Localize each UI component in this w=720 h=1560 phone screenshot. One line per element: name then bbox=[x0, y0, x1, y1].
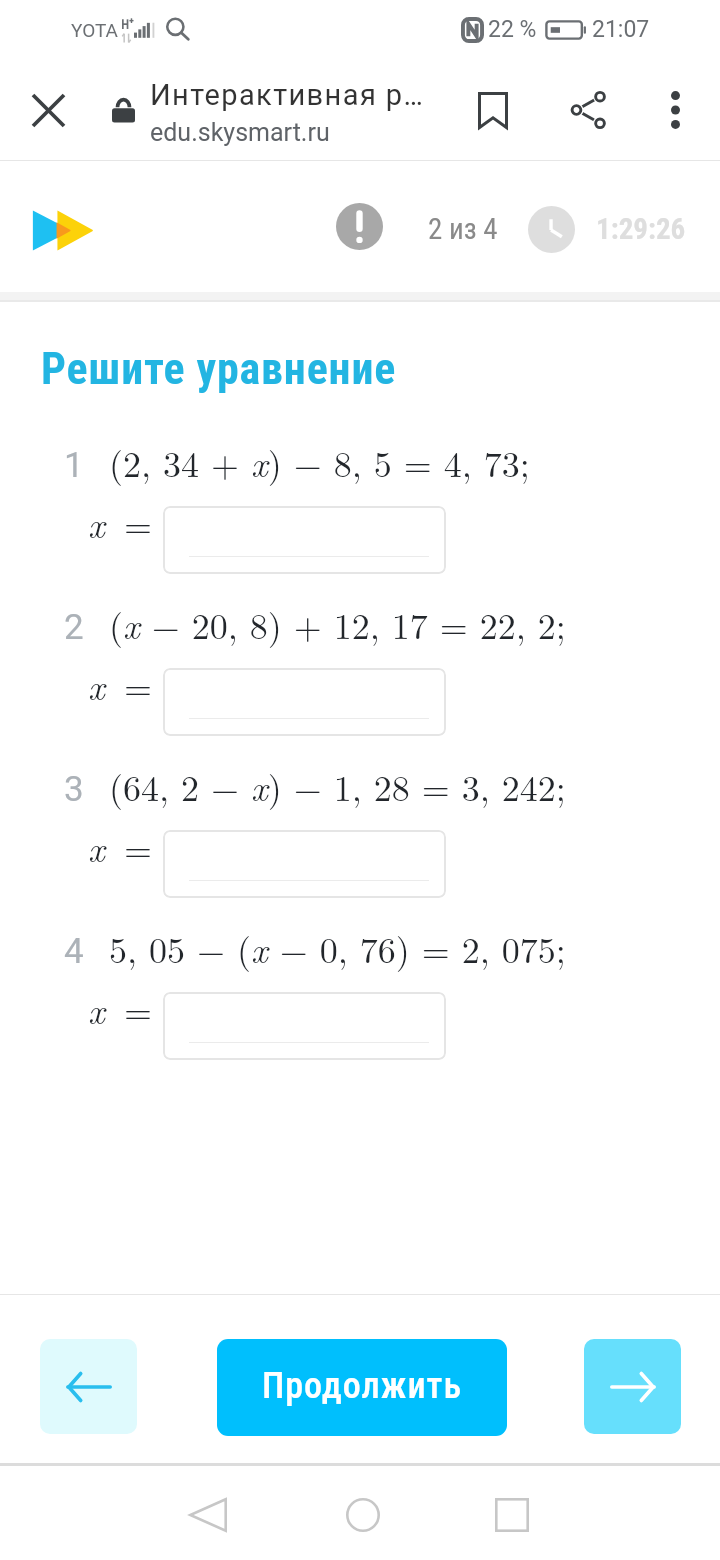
button[interactable]: Answer field bbox=[163, 830, 446, 898]
button[interactable]: Share bbox=[552, 73, 626, 147]
staticText: 1 bbox=[64, 445, 84, 486]
staticText: edu.skysmart.ru bbox=[150, 118, 330, 147]
staticText: Решите уравнение bbox=[41, 343, 397, 395]
staticText: 5, 05 − (x − 0, 76) = 2, 075; bbox=[109, 922, 566, 973]
button[interactable]: Home bbox=[288, 1469, 438, 1560]
button[interactable]: Recents bbox=[437, 1469, 587, 1560]
button[interactable]: Bookmark bbox=[456, 73, 530, 147]
staticText: 2 из 4 bbox=[428, 212, 498, 246]
button[interactable]: Продолжить bbox=[217, 1339, 507, 1436]
staticText: (2, 34 + x) − 8, 5 = 4, 73; bbox=[109, 436, 530, 487]
staticText: 4 bbox=[64, 931, 84, 972]
button[interactable]: Back bbox=[133, 1469, 283, 1560]
button[interactable]: Next bbox=[584, 1339, 681, 1434]
button[interactable]: Close bbox=[13, 75, 83, 145]
button[interactable]: Info bbox=[336, 203, 383, 250]
staticText: YOTA bbox=[71, 19, 118, 41]
button[interactable]: Answer field bbox=[163, 668, 446, 736]
staticText: 22 % bbox=[488, 16, 537, 43]
staticText: x = bbox=[88, 983, 152, 1034]
button[interactable]: More options bbox=[638, 73, 712, 147]
staticText: 3 bbox=[64, 769, 84, 810]
staticText: (x − 20, 8) + 12, 17 = 22, 2; bbox=[109, 598, 566, 649]
staticText: (64, 2 − x) − 1, 28 = 3, 242; bbox=[109, 760, 566, 811]
staticText: x = bbox=[88, 821, 152, 872]
staticText: 1:29:26 bbox=[596, 212, 686, 246]
button[interactable]: Answer field bbox=[163, 992, 446, 1060]
button[interactable]: Answer field bbox=[163, 506, 446, 574]
staticText: x = bbox=[88, 497, 152, 548]
button[interactable]: Previous bbox=[40, 1339, 137, 1434]
staticText: 21:07 bbox=[592, 16, 650, 43]
staticText: Продолжить bbox=[262, 1365, 463, 1407]
staticText: 2 bbox=[64, 607, 84, 648]
staticText: x = bbox=[88, 659, 152, 710]
staticText: Интерактивная р… bbox=[150, 78, 425, 112]
